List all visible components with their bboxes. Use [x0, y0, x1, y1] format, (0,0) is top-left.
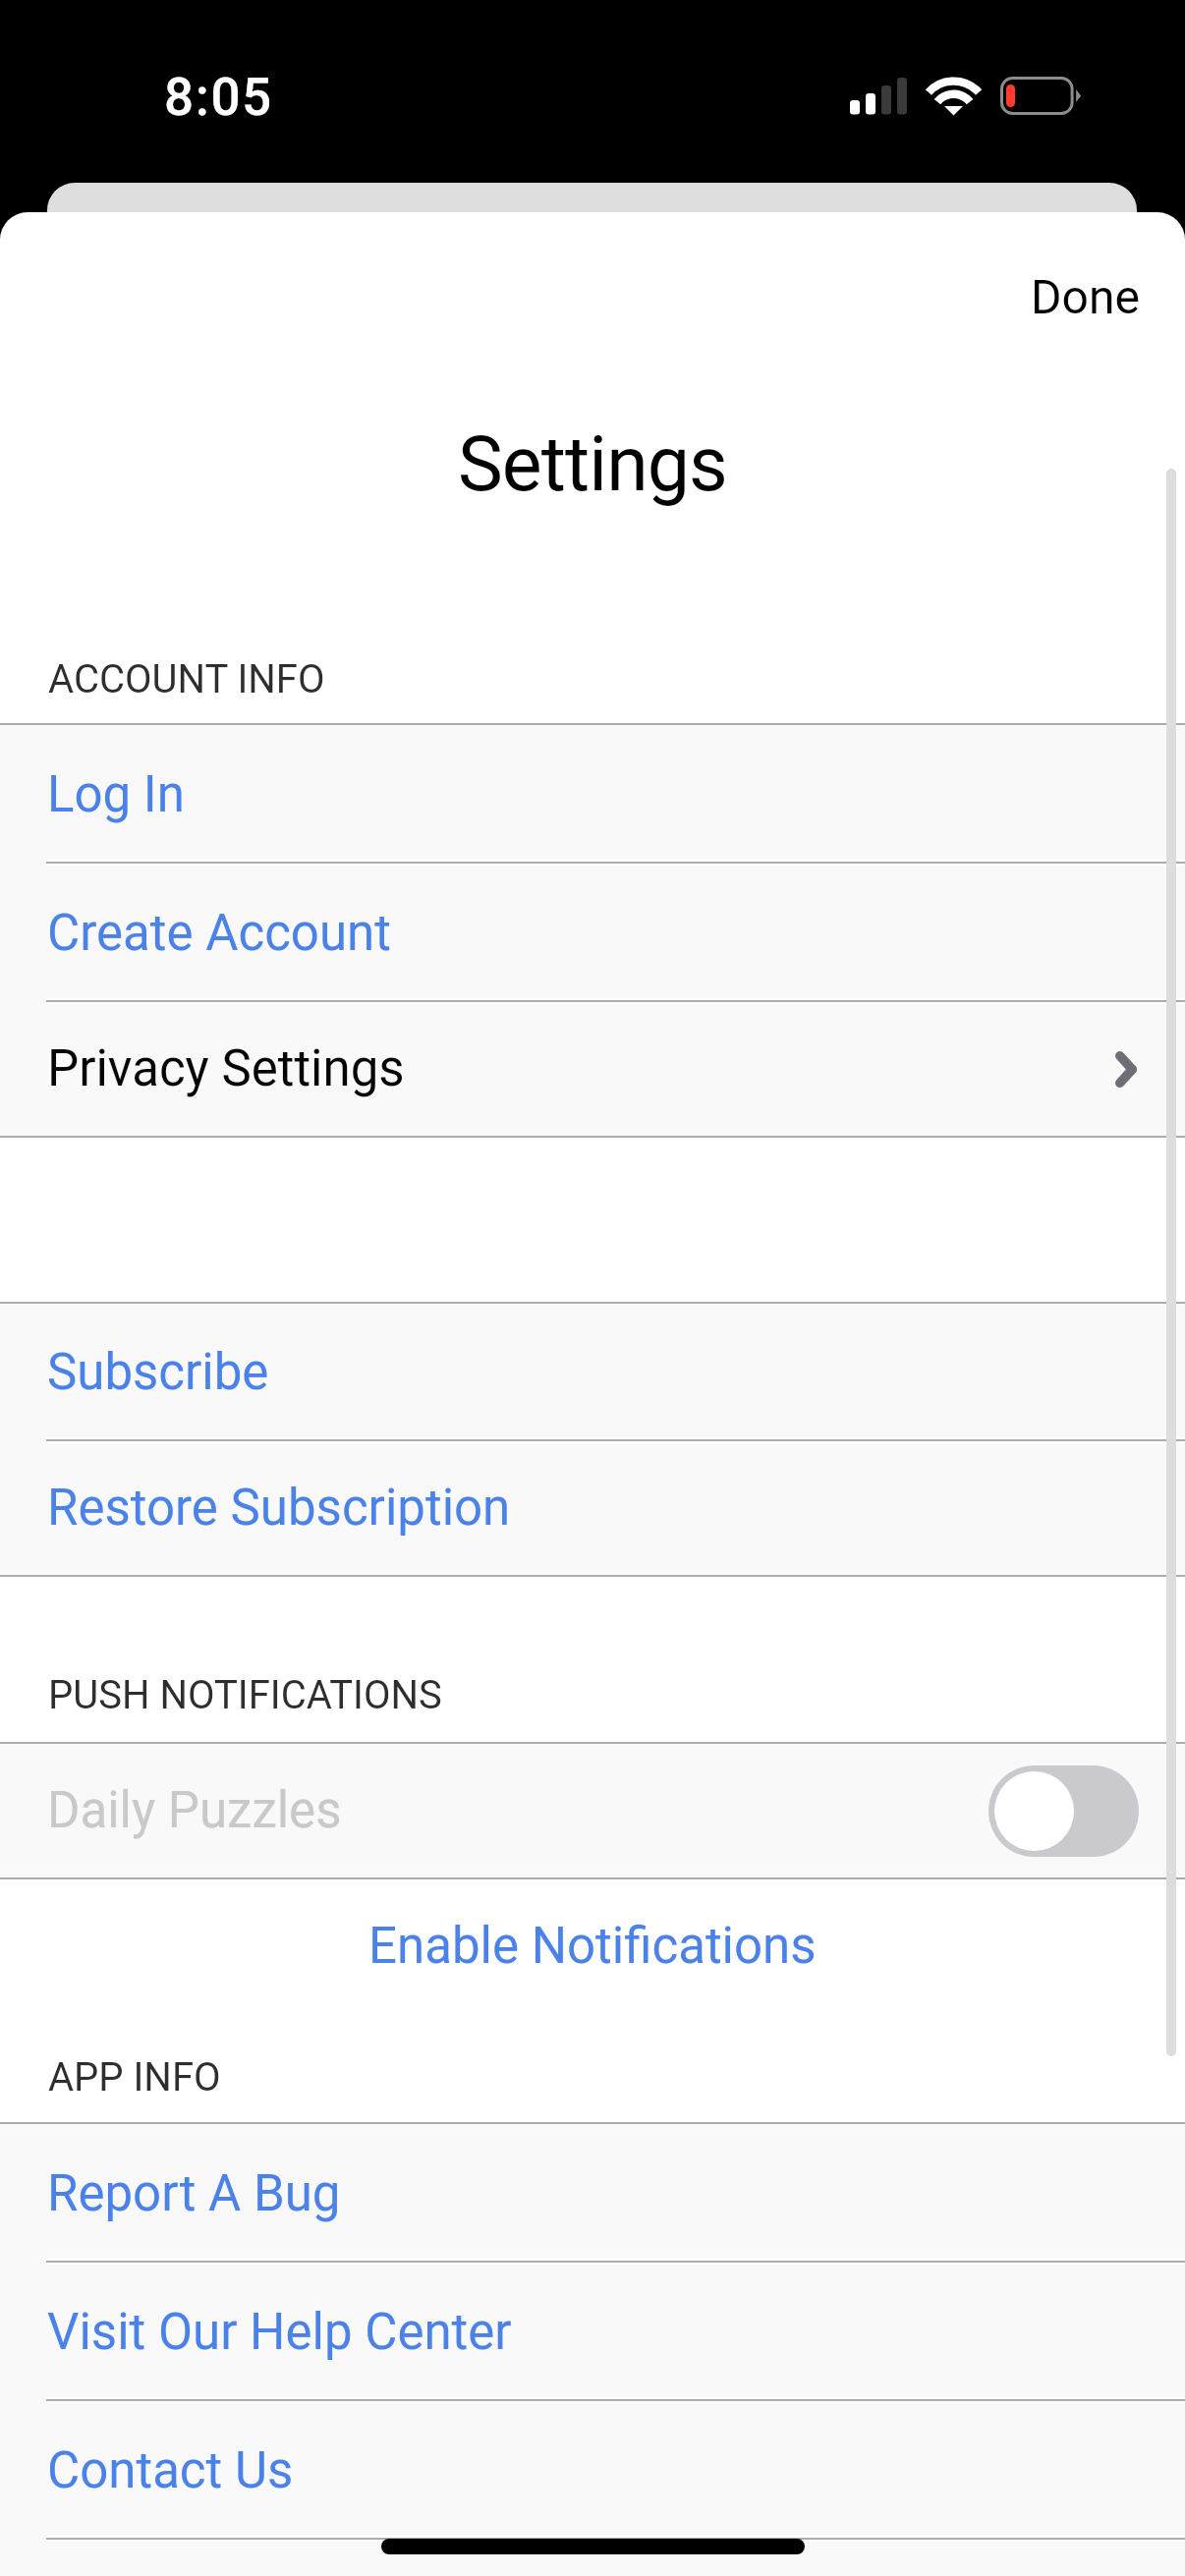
button[interactable]: Enable Notifications [341, 1893, 844, 1999]
button[interactable]: Daily Puzzles [0, 1744, 1185, 1877]
staticText: 8:05 [164, 67, 273, 128]
staticText: Report A Bug [47, 2164, 341, 2223]
button[interactable]: Report A Bug [0, 2124, 1185, 2263]
staticText: Log In [47, 765, 185, 824]
button[interactable]: Visit Our Help Center [0, 2263, 1185, 2401]
button[interactable]: Done [1009, 250, 1161, 344]
staticText: Create Account [47, 904, 391, 963]
staticText: Restore Subscription [47, 1479, 511, 1538]
staticText: ACCOUNT INFO [48, 656, 325, 702]
staticText: APP INFO [48, 2054, 221, 2100]
button[interactable]: Restore Subscription [0, 1441, 1185, 1575]
staticText: Settings [458, 420, 727, 509]
staticText: Subscribe [47, 1343, 269, 1402]
button[interactable]: Create Account [0, 864, 1185, 1002]
staticText: Visit Our Help Center [47, 2303, 512, 2362]
staticText: Enable Notifications [368, 1917, 817, 1976]
button[interactable]: Contact Us [0, 2401, 1185, 2540]
staticText: Contact Us [47, 2441, 294, 2500]
button[interactable]: Daily Puzzles notifications toggle [988, 1765, 1139, 1857]
button[interactable]: Subscribe [0, 1304, 1185, 1441]
staticText: Privacy Settings [47, 1039, 405, 1098]
button[interactable]: Privacy Settings [0, 1002, 1185, 1136]
staticText: Done [1031, 269, 1140, 324]
other: Open Privacy Settings [1115, 1051, 1137, 1088]
button[interactable]: Log In [0, 725, 1185, 864]
staticText: PUSH NOTIFICATIONS [48, 1672, 442, 1718]
staticText: Daily Puzzles [47, 1781, 342, 1840]
